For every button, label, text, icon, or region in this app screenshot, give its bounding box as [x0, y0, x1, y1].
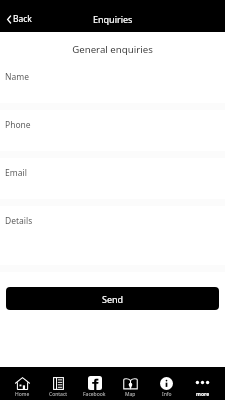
button[interactable]: More	[185, 367, 220, 398]
other: Info	[160, 377, 173, 390]
staticText: Contact	[49, 391, 68, 398]
staticText: Facebook	[83, 391, 106, 398]
button[interactable]: Phone	[0, 104, 225, 152]
staticText: Home	[15, 391, 30, 398]
button[interactable]: Facebook	[77, 367, 112, 398]
other: Contact	[53, 377, 64, 390]
button[interactable]: Contact	[41, 367, 76, 398]
staticText: Phone	[5, 119, 31, 131]
button[interactable]: Info	[149, 367, 184, 398]
other: More	[195, 377, 210, 390]
button[interactable]: Home	[5, 367, 40, 398]
staticText: Details	[5, 215, 33, 227]
button[interactable]: Details	[0, 200, 225, 268]
button[interactable]: Back	[5, 10, 34, 28]
button[interactable]: Send	[6, 287, 219, 310]
other: Facebook	[88, 376, 102, 390]
other: Home	[15, 377, 30, 390]
button[interactable]: Name	[0, 56, 225, 104]
staticText: Back	[13, 13, 32, 25]
staticText: Enquiries	[93, 13, 133, 25]
staticText: General enquiries	[0, 43, 225, 56]
staticText: Email	[5, 167, 27, 179]
staticText: more	[196, 391, 210, 398]
button[interactable]: Email	[0, 152, 225, 200]
staticText: Name	[5, 71, 29, 83]
button[interactable]: Map	[113, 367, 148, 398]
other: Map	[123, 376, 138, 390]
staticText: Info	[162, 391, 172, 398]
staticText: Map	[125, 391, 136, 398]
staticText: Send	[102, 293, 124, 305]
